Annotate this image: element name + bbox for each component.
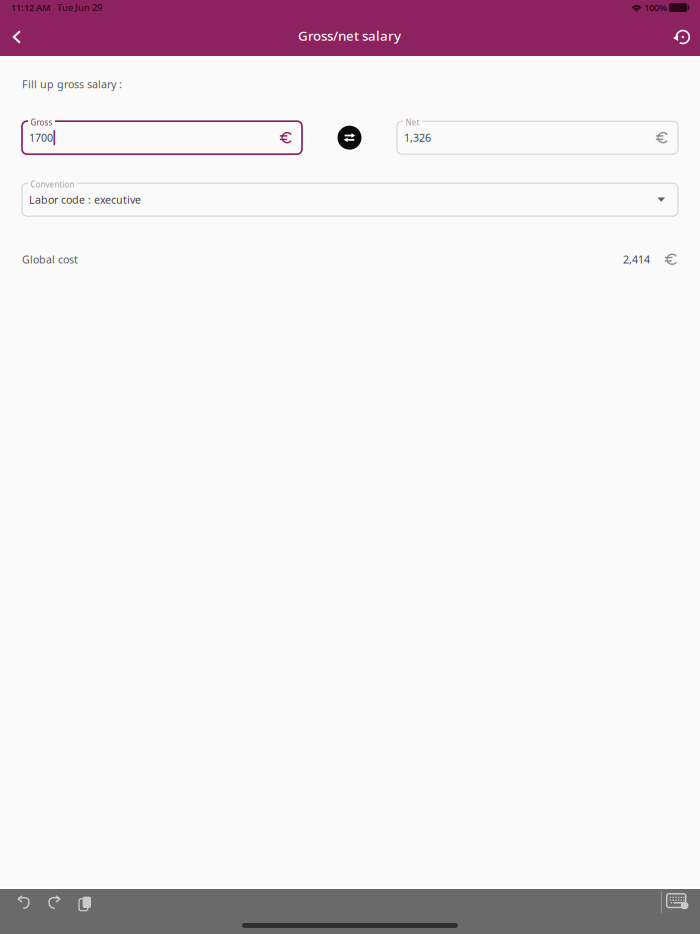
staticText: 1,326 (404, 131, 431, 145)
staticText: 11:12 AM (11, 1, 51, 14)
button[interactable]: Undo (10, 887, 39, 917)
staticText: Net (405, 117, 419, 128)
staticText: Tue Jun 29 (51, 1, 102, 14)
staticText: Gross (30, 117, 52, 128)
staticText: 100% (642, 1, 669, 14)
button[interactable]: Swap gross and net (329, 121, 369, 154)
button[interactable]: Back (0, 18, 34, 56)
button[interactable]: Paste (68, 887, 97, 917)
staticText: 2,414 (623, 252, 650, 266)
staticText: 1700 (29, 131, 53, 145)
staticText: Convention (30, 179, 74, 190)
button[interactable]: Labor code : executive (0, 154, 700, 216)
button[interactable]: History (665, 18, 700, 56)
button[interactable]: Hide keyboard (662, 887, 692, 917)
staticText: Global cost (22, 252, 78, 266)
button[interactable]: Redo (39, 887, 68, 917)
staticText: Gross/net salary (298, 27, 401, 44)
staticText: Fill up gross salary : (22, 77, 122, 91)
staticText: Labor code : executive (29, 193, 141, 207)
